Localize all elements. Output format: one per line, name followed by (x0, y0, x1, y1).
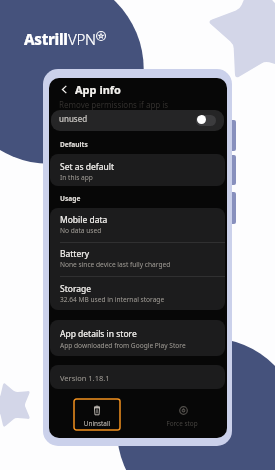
staticText: Uninstall (74, 419, 120, 428)
button[interactable]: unused (51, 110, 224, 131)
staticText: No data used (60, 226, 102, 235)
button[interactable]: Version 1.18.1 (50, 365, 225, 389)
staticText: Usage (60, 194, 81, 203)
staticText: None since device last fully charged (60, 260, 171, 269)
staticText: App downloaded from Google Play Store (60, 341, 186, 350)
staticText: Force stop (159, 419, 205, 428)
staticText: Mobile data (60, 214, 108, 226)
staticText: Version 1.18.1 (60, 373, 110, 383)
staticText: Storage (60, 283, 92, 295)
staticText: Set as default (60, 161, 115, 173)
button[interactable]: Set as default (50, 154, 225, 186)
staticText: Remove permissions if app is (59, 99, 169, 110)
staticText: unused (59, 113, 88, 124)
button[interactable]: App details in store (50, 320, 225, 356)
button[interactable]: Uninstall (74, 399, 120, 430)
button[interactable]: Back (58, 83, 71, 96)
button[interactable]: Mobile data (50, 208, 225, 310)
button[interactable]: Force stop (159, 399, 205, 430)
button[interactable] (196, 115, 216, 126)
staticText: 32.64 MB used in internal storage (60, 295, 165, 304)
staticText: Defaults (60, 140, 88, 149)
staticText: Battery (60, 248, 90, 260)
staticText: App details in store (60, 328, 137, 340)
staticText: Astrill (24, 29, 68, 49)
staticText: In this app (60, 173, 93, 182)
staticText: App info (75, 82, 121, 97)
staticText: VPN (68, 29, 96, 49)
